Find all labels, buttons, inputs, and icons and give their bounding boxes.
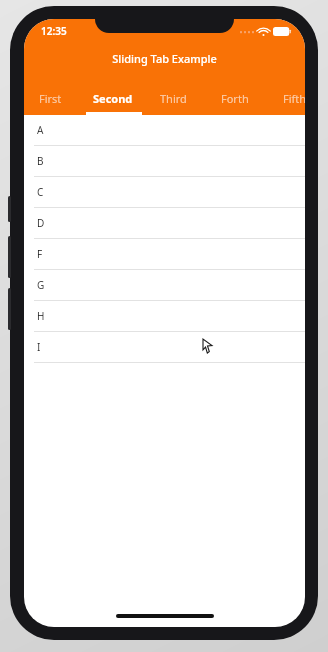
staticText: D bbox=[37, 216, 45, 230]
button[interactable]: B bbox=[24, 146, 305, 177]
staticText: F bbox=[37, 247, 43, 261]
staticText: Forth bbox=[221, 91, 249, 106]
button[interactable]: Third bbox=[150, 81, 196, 115]
button[interactable]: D bbox=[24, 208, 305, 239]
staticText: A bbox=[37, 123, 44, 137]
button[interactable]: F bbox=[24, 239, 305, 270]
staticText: I bbox=[37, 340, 41, 354]
staticText: Fifth bbox=[283, 91, 305, 106]
button[interactable]: Second bbox=[84, 81, 142, 115]
staticText: First bbox=[39, 91, 62, 106]
button[interactable]: H bbox=[24, 301, 305, 332]
button[interactable]: I bbox=[24, 332, 305, 363]
staticText: B bbox=[37, 154, 44, 168]
staticText: 12:35 bbox=[41, 24, 67, 38]
button[interactable]: Fifth bbox=[272, 81, 305, 115]
staticText: C bbox=[37, 185, 44, 199]
button[interactable]: G bbox=[24, 270, 305, 301]
button[interactable]: First bbox=[28, 81, 72, 115]
staticText: Second bbox=[93, 91, 133, 106]
button[interactable]: C bbox=[24, 177, 305, 208]
button[interactable]: A bbox=[24, 115, 305, 146]
button[interactable]: Forth bbox=[212, 81, 258, 115]
staticText: G bbox=[37, 278, 45, 292]
staticText: Sliding Tab Example bbox=[112, 51, 217, 66]
staticText: Third bbox=[160, 91, 187, 106]
staticText: H bbox=[37, 309, 45, 323]
